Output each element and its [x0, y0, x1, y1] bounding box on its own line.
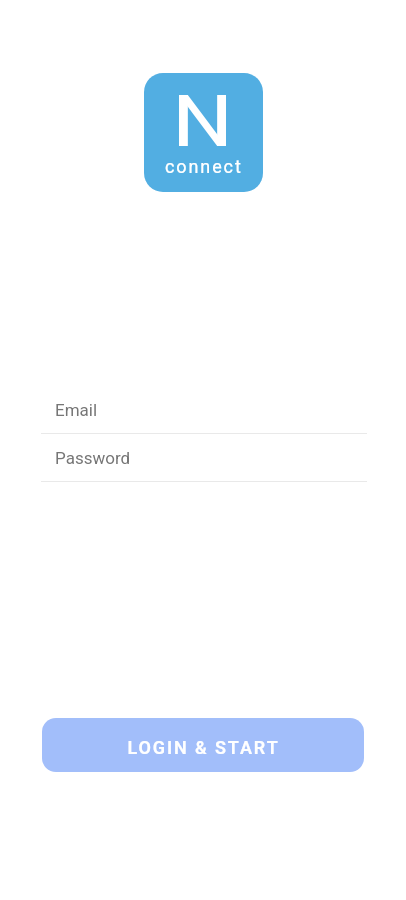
- button[interactable]: LOGIN & START: [42, 718, 364, 772]
- other: N connect logo: [144, 73, 263, 192]
- button[interactable]: Email: [41, 391, 367, 433]
- staticText: Email: [55, 400, 98, 420]
- staticText: Password: [55, 448, 131, 468]
- staticText: LOGIN & START: [127, 737, 280, 758]
- button[interactable]: Password: [41, 439, 367, 481]
- staticText: connect: [165, 156, 243, 177]
